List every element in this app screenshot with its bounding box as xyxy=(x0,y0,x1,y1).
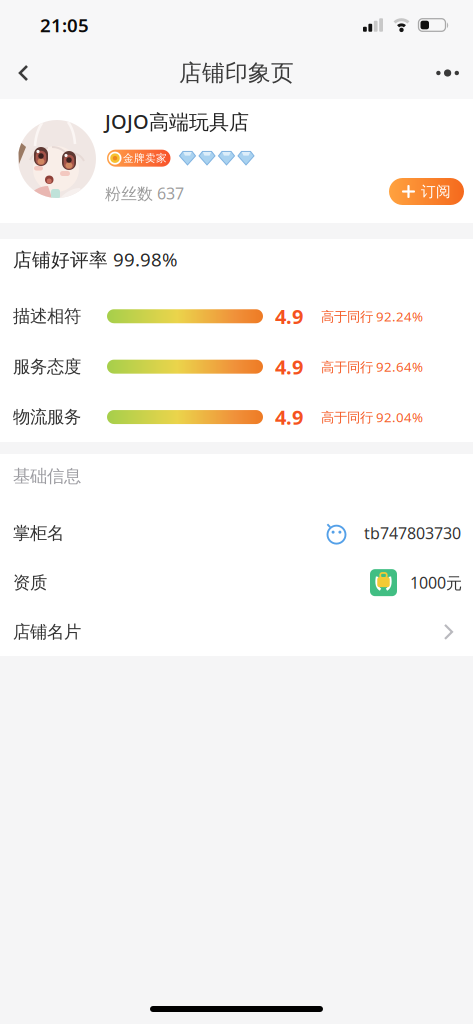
staticText: 4.9 xyxy=(275,303,303,330)
staticText: 高于同行 92.64% xyxy=(321,358,423,375)
staticText: 店铺好评率 99.98% xyxy=(13,247,178,272)
staticText: 4.9 xyxy=(275,404,303,430)
staticText: 高于同行 92.24% xyxy=(321,307,423,325)
staticText: 店铺名片 xyxy=(13,621,81,642)
staticText: 物流服务 xyxy=(13,406,81,428)
staticText: 粉丝数 637 xyxy=(105,183,184,204)
staticText: 描述相符 xyxy=(13,306,81,327)
staticText: 资质 xyxy=(13,572,47,593)
staticText: tb747803730 xyxy=(364,522,461,544)
staticText: 高于同行 92.04% xyxy=(321,408,423,426)
staticText: 订阅 xyxy=(421,182,451,200)
staticText: 基础信息 xyxy=(13,466,81,487)
button[interactable]: Back xyxy=(0,52,29,94)
staticText: 掌柜名 xyxy=(13,522,64,544)
button[interactable]: 店铺名片 xyxy=(0,607,473,656)
button[interactable]: 订阅 xyxy=(389,178,464,205)
staticText: 服务态度 xyxy=(13,356,81,377)
staticText: 21:05 xyxy=(40,13,89,37)
staticText: 店铺印象页 xyxy=(179,59,294,87)
staticText: JOJO高端玩具店 xyxy=(105,108,249,135)
staticText: 1000元 xyxy=(410,572,462,593)
button[interactable]: More xyxy=(436,55,473,91)
staticText: 金牌卖家 xyxy=(123,152,167,165)
staticText: 4.9 xyxy=(275,353,303,380)
button[interactable]: 联系掌柜 xyxy=(326,523,347,544)
